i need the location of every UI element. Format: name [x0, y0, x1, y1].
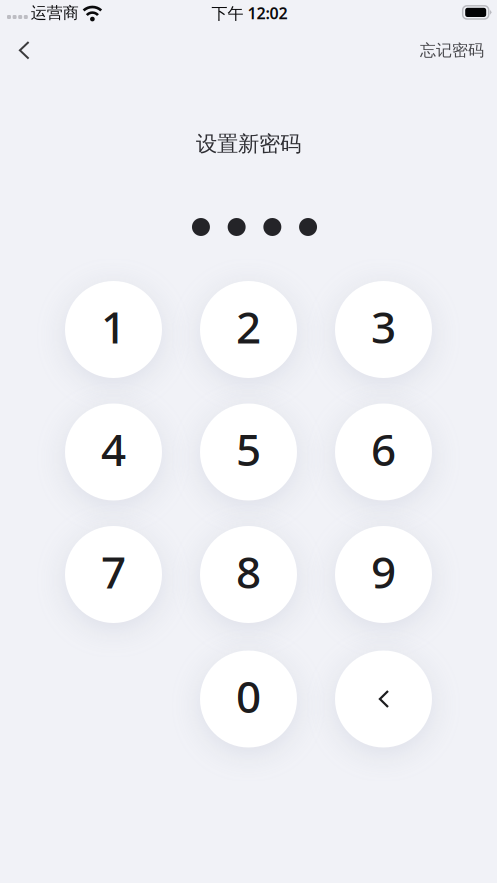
button[interactable]: Delete [335, 650, 432, 747]
button[interactable]: 5 [200, 403, 297, 500]
staticText: 0 [236, 667, 261, 725]
button[interactable]: 1 [65, 281, 162, 378]
staticText: 忘记密码 [420, 40, 484, 60]
button[interactable]: 4 [65, 403, 162, 500]
staticText: 设置新密码 [196, 131, 301, 157]
button[interactable]: 7 [65, 526, 162, 623]
button[interactable]: 3 [335, 281, 432, 378]
staticText: 9 [371, 542, 396, 601]
button[interactable]: 8 [200, 526, 297, 623]
button[interactable]: 9 [335, 526, 432, 623]
staticText: 5 [236, 420, 261, 478]
button[interactable]: 6 [335, 403, 432, 500]
staticText: 下午 12:02 [211, 2, 287, 24]
button[interactable]: 忘记密码 [400, 28, 497, 72]
staticText: 1 [101, 297, 126, 356]
button[interactable]: 0 [200, 650, 297, 747]
staticText: 8 [236, 542, 261, 601]
staticText: 6 [371, 420, 396, 478]
staticText: 7 [101, 542, 126, 601]
staticText: 4 [101, 420, 126, 478]
button[interactable]: 2 [200, 281, 297, 378]
staticText: 2 [236, 297, 261, 356]
staticText: 3 [371, 297, 396, 356]
staticText: 运营商 [31, 3, 79, 23]
button[interactable]: Back [0, 30, 49, 71]
